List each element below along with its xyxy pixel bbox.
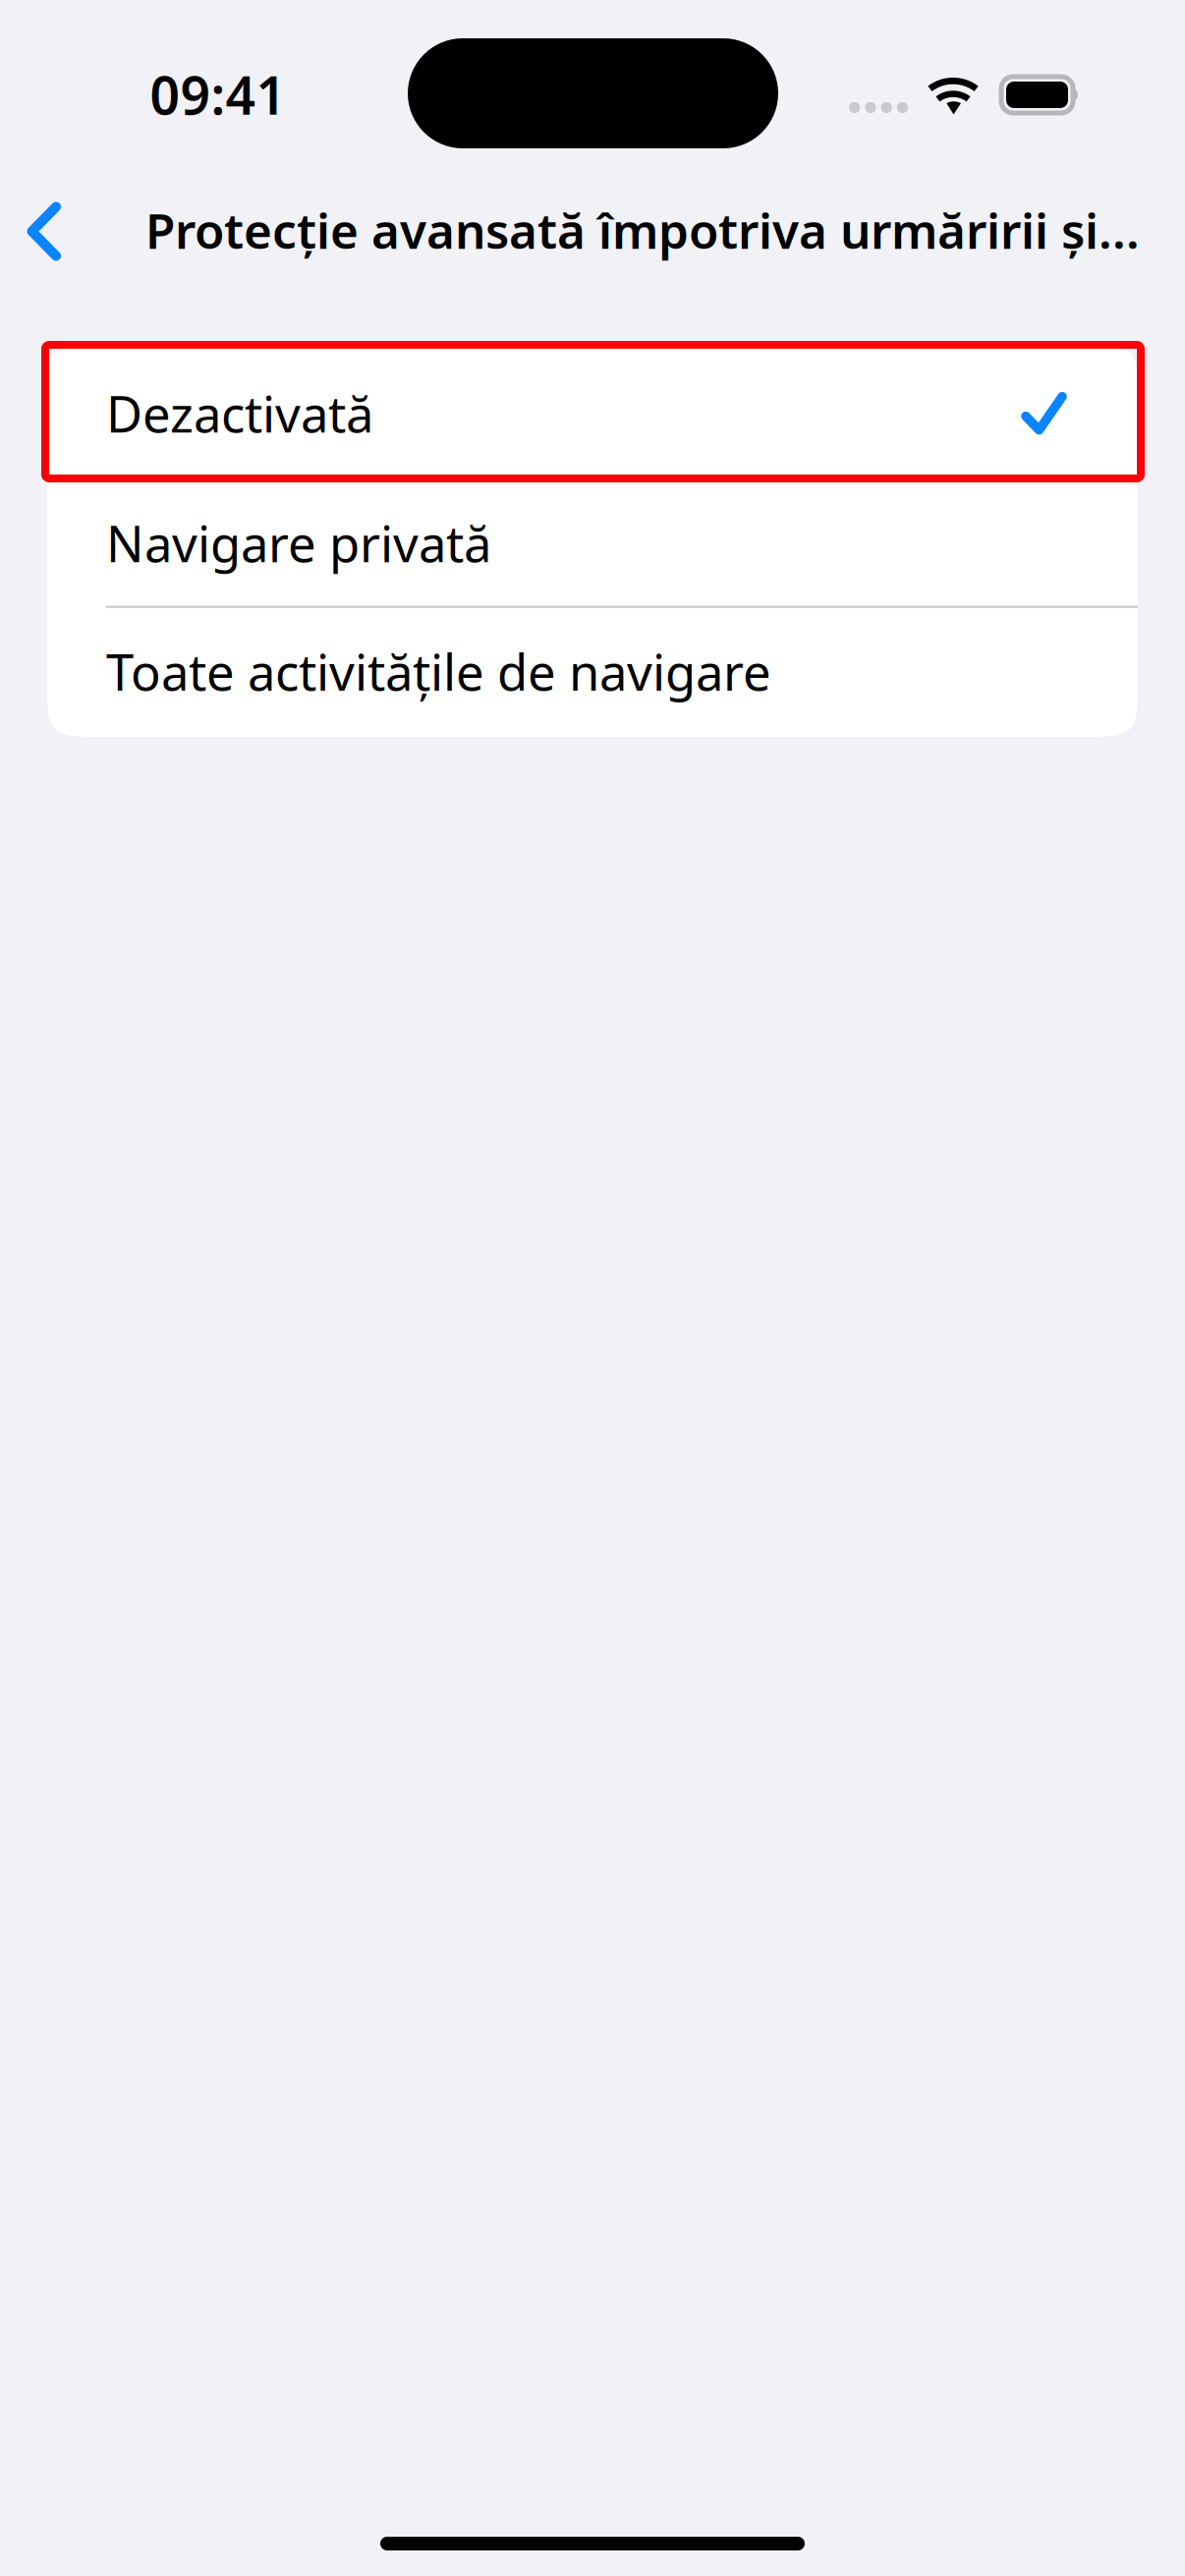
staticText: Toate activitățile de navigare (106, 638, 771, 704)
button[interactable]: Back (0, 169, 108, 289)
button[interactable]: Navigare privată (47, 475, 1138, 606)
staticText: Protecție avansată împotriva urmăririi ș… (145, 198, 1140, 262)
staticText: Dezactivată (106, 380, 373, 446)
button[interactable]: Dezactivată (47, 344, 1138, 475)
staticText: Navigare privată (106, 510, 491, 576)
staticText: 09:41 (150, 60, 286, 129)
button[interactable]: Toate activitățile de navigare (47, 606, 1138, 737)
